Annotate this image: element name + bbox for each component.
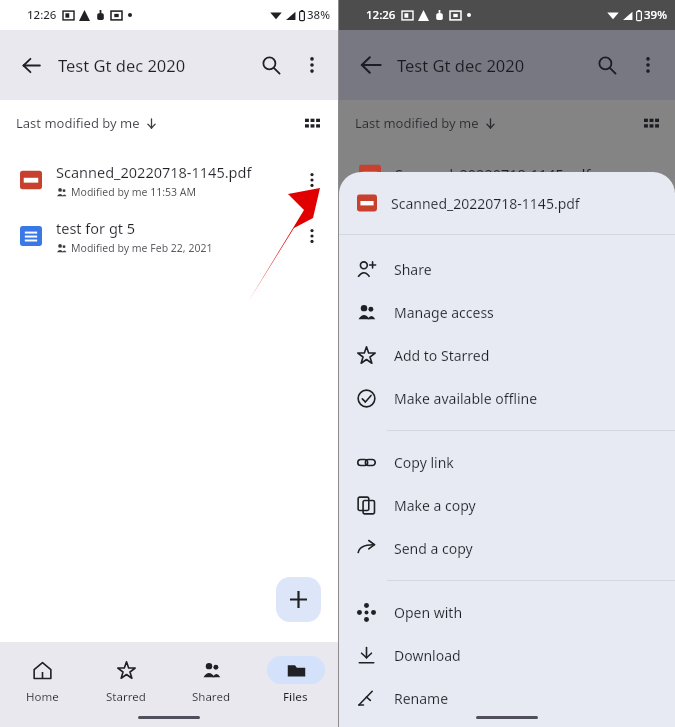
staticText: Modified by me Feb 22, 2021 bbox=[71, 241, 213, 255]
button[interactable]: Rename bbox=[339, 677, 675, 720]
button[interactable]: Manage access bbox=[339, 291, 675, 334]
button[interactable]: Add to Starred bbox=[339, 334, 675, 377]
staticText: Test Gt dec 2020 bbox=[397, 54, 525, 76]
staticText: Files bbox=[283, 689, 308, 705]
button[interactable]: Search bbox=[250, 44, 292, 86]
staticText: Scanned_20220718-1145.pdf bbox=[56, 162, 252, 182]
button[interactable]: Download bbox=[339, 634, 675, 677]
button[interactable]: Open with bbox=[339, 591, 675, 634]
button[interactable]: Back bbox=[10, 44, 52, 86]
button[interactable]: Copy link bbox=[339, 441, 675, 484]
button[interactable]: Make a copy bbox=[339, 484, 675, 527]
staticText: Starred bbox=[106, 689, 146, 705]
staticText: Last modified by me bbox=[16, 114, 140, 132]
staticText: Last modified by me bbox=[355, 114, 479, 132]
button[interactable]: Shared bbox=[168, 656, 253, 705]
button[interactable]: Files bbox=[253, 656, 338, 705]
staticText: 12:26 bbox=[366, 7, 396, 23]
button[interactable]: Grid view bbox=[294, 105, 330, 141]
button[interactable]: Last modified by me bbox=[10, 110, 164, 136]
staticText: Modified by me 11:53 AM bbox=[71, 185, 197, 199]
button[interactable]: More actions bbox=[290, 158, 334, 202]
button[interactable]: More options bbox=[292, 45, 332, 85]
staticText: Test Gt dec 2020 bbox=[58, 54, 186, 76]
staticText: Home bbox=[26, 689, 59, 705]
button[interactable]: Scanned_20220718-1145.pdf bbox=[0, 152, 338, 208]
staticText: test for gt 5 bbox=[56, 218, 136, 238]
button[interactable]: test for gt 5 bbox=[0, 208, 338, 264]
staticText: Download bbox=[394, 646, 461, 665]
button[interactable]: Starred bbox=[84, 656, 168, 705]
button[interactable]: More actions bbox=[290, 214, 334, 258]
staticText: 39% bbox=[644, 7, 667, 23]
staticText: Scanned_20220718-1145.pdf bbox=[391, 194, 580, 213]
button[interactable]: Make available offline bbox=[339, 377, 675, 420]
staticText: Scanned_20220718-1145.pdf bbox=[395, 164, 591, 184]
button[interactable]: Share bbox=[339, 248, 675, 291]
staticText: 12:26 bbox=[27, 7, 57, 23]
staticText: Add to Starred bbox=[394, 346, 490, 365]
staticText: Open with bbox=[394, 603, 463, 622]
staticText: Manage access bbox=[394, 303, 494, 322]
staticText: 38% bbox=[307, 7, 330, 23]
staticText: Copy link bbox=[394, 453, 454, 472]
staticText: Share bbox=[394, 260, 432, 279]
staticText: Shared bbox=[192, 689, 230, 705]
staticText: Make available offline bbox=[394, 389, 538, 408]
button[interactable]: Home bbox=[0, 656, 84, 705]
staticText: Rename bbox=[394, 689, 449, 708]
button[interactable]: Create new bbox=[276, 577, 321, 622]
staticText: Send a copy bbox=[394, 539, 473, 558]
button[interactable]: Send a copy bbox=[339, 527, 675, 570]
staticText: Make a copy bbox=[394, 496, 476, 515]
